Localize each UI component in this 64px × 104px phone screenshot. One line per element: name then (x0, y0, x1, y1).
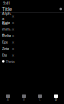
staticText: Beta (2, 20, 10, 25)
staticText: Eta (2, 52, 7, 57)
staticText: x (12, 26, 14, 31)
staticText: B (23, 98, 25, 101)
button[interactable]: Zeta (0, 45, 16, 52)
button[interactable]: Gamma (0, 26, 16, 32)
staticText: C (39, 98, 41, 101)
staticText: Gamma (2, 21, 11, 37)
button[interactable]: B (16, 92, 32, 104)
staticText: x (12, 33, 14, 38)
staticText: x (12, 46, 14, 51)
staticText: x (12, 39, 14, 44)
button[interactable]: Alpha (0, 13, 16, 19)
button[interactable]: C (32, 92, 48, 104)
button[interactable]: D (48, 92, 64, 104)
staticText: x (12, 52, 14, 57)
staticText: Eps (2, 39, 8, 44)
staticText: x (12, 13, 14, 18)
staticText: x (12, 20, 14, 25)
button[interactable]: Delta (0, 32, 16, 39)
staticText: D (55, 98, 57, 101)
staticText: Delta (2, 33, 11, 38)
button[interactable]: Eps (0, 39, 16, 45)
staticText: 9:41 (3, 0, 10, 6)
staticText: Alpha (2, 10, 11, 21)
button[interactable]: A (0, 92, 16, 104)
staticText: A (7, 98, 9, 101)
button[interactable]: Beta (0, 19, 16, 26)
staticText: Zeta (2, 46, 9, 51)
staticText: Theta (5, 59, 14, 64)
button[interactable]: Eta (0, 52, 16, 58)
staticText: Title (2, 5, 12, 13)
